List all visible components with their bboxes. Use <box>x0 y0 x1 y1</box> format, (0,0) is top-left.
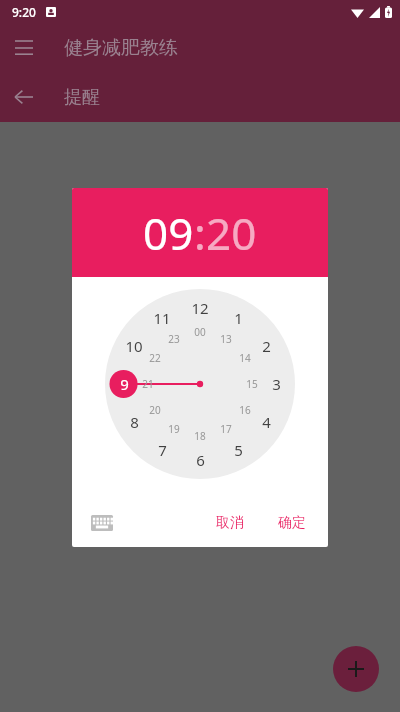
staticText: 确定 <box>278 514 306 532</box>
staticText: 22 <box>149 351 161 365</box>
button[interactable]: 09 <box>143 203 194 263</box>
staticText: 9 <box>120 374 129 394</box>
button[interactable]: Menu <box>0 24 48 72</box>
staticText: 2 <box>262 336 271 356</box>
button[interactable]: 确定 <box>270 508 314 538</box>
staticText: 9:20 <box>12 4 36 20</box>
button[interactable]: Add <box>333 646 379 692</box>
staticText: 19 <box>168 422 180 436</box>
staticText: 5 <box>234 440 243 460</box>
staticText: 11 <box>153 308 171 328</box>
staticText: 17 <box>220 422 232 436</box>
staticText: 取消 <box>216 514 244 532</box>
staticText: 13 <box>220 332 232 346</box>
staticText: 8 <box>130 412 139 432</box>
staticText: 15 <box>246 377 258 391</box>
staticText: 12 <box>191 298 209 318</box>
staticText: 健身减肥教练 <box>64 36 178 60</box>
staticText: 20 <box>149 403 161 417</box>
staticText: 21 <box>142 377 154 391</box>
button[interactable]: Back <box>0 73 48 121</box>
staticText: 23 <box>168 332 180 346</box>
staticText: 20 <box>206 203 257 263</box>
staticText: 18 <box>194 429 206 443</box>
staticText: 09 <box>143 203 194 263</box>
staticText: 14 <box>239 351 251 365</box>
button[interactable]: 20 <box>206 203 257 263</box>
staticText: 00 <box>194 325 206 339</box>
staticText: 6 <box>196 450 205 470</box>
staticText: : <box>194 203 206 263</box>
staticText: 4 <box>262 412 271 432</box>
button[interactable]: 取消 <box>208 508 252 538</box>
staticText: 7 <box>158 440 167 460</box>
staticText: 10 <box>125 336 143 356</box>
staticText: 提醒 <box>64 86 100 109</box>
button[interactable]: Switch to text input <box>84 505 120 541</box>
staticText: 3 <box>272 374 281 394</box>
staticText: 1 <box>234 308 243 328</box>
staticText: 16 <box>239 403 251 417</box>
